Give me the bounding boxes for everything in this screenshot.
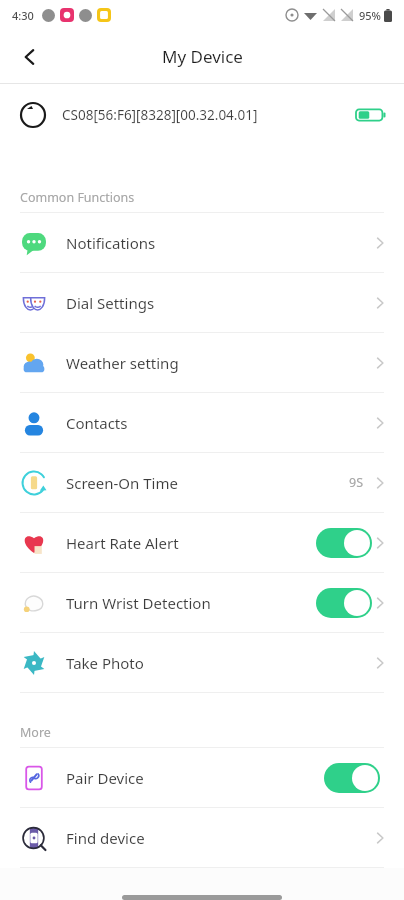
staticText: My Device xyxy=(162,45,243,68)
button[interactable]: Contacts xyxy=(0,393,404,452)
staticText: Heart Rate Alert xyxy=(66,533,179,553)
staticText: Weather setting xyxy=(66,353,179,373)
button[interactable]: Back xyxy=(10,37,50,77)
staticText: Screen-On Time xyxy=(66,473,178,493)
staticText: More xyxy=(20,724,51,741)
button[interactable]: Notifications xyxy=(0,213,404,272)
staticText: 95% xyxy=(359,8,381,23)
staticText: Common Functions xyxy=(20,189,135,206)
button[interactable]: Heart Rate Alert toggle xyxy=(316,528,372,558)
staticText: Dial Settings xyxy=(66,293,155,313)
button[interactable]: Take Photo xyxy=(0,633,404,692)
staticText: Find device xyxy=(66,828,145,848)
staticText: Contacts xyxy=(66,413,128,433)
button[interactable]: CS08[56:F6][8328][00.32.04.01] xyxy=(0,84,404,146)
button[interactable]: Pair Device toggle xyxy=(324,763,380,793)
button[interactable]: Turn Wrist Detection xyxy=(0,573,404,632)
staticText: Pair Device xyxy=(66,768,144,788)
button[interactable]: Heart Rate Alert xyxy=(0,513,404,572)
staticText: Take Photo xyxy=(66,653,144,673)
button[interactable]: Find device xyxy=(0,808,404,867)
button[interactable]: Dial Settings xyxy=(0,273,404,332)
staticText: 9S xyxy=(349,474,364,491)
button[interactable]: Screen-On Time xyxy=(0,453,404,512)
staticText: 4:30 xyxy=(12,8,34,23)
staticText: Notifications xyxy=(66,233,156,253)
staticText: Turn Wrist Detection xyxy=(66,593,211,613)
button[interactable]: Turn Wrist Detection toggle xyxy=(316,588,372,618)
button[interactable]: Pair Device xyxy=(0,748,404,807)
button[interactable]: Weather setting xyxy=(0,333,404,392)
staticText: CS08[56:F6][8328][00.32.04.01] xyxy=(62,106,258,124)
